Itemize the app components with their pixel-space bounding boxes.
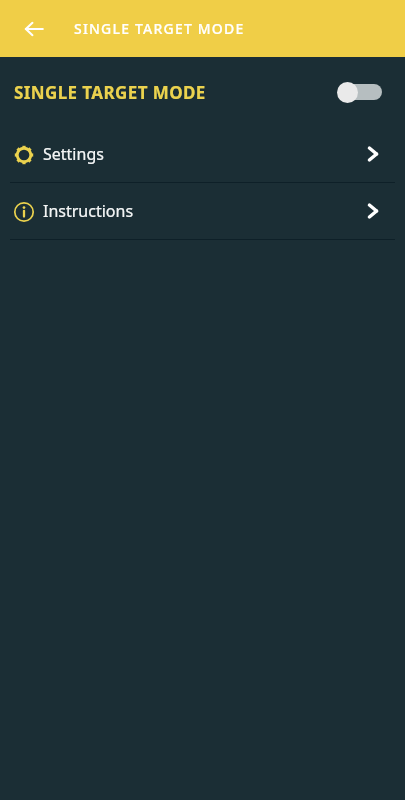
staticText: SINGLE TARGET MODE — [74, 19, 245, 38]
button[interactable]: Toggle single target mode — [337, 78, 383, 106]
staticText: SINGLE TARGET MODE — [14, 81, 206, 104]
button[interactable]: Settings — [0, 126, 405, 182]
staticText: Instructions — [43, 200, 134, 222]
button[interactable]: Instructions — [0, 183, 405, 239]
button[interactable]: Back — [16, 11, 52, 47]
staticText: Settings — [43, 143, 104, 165]
